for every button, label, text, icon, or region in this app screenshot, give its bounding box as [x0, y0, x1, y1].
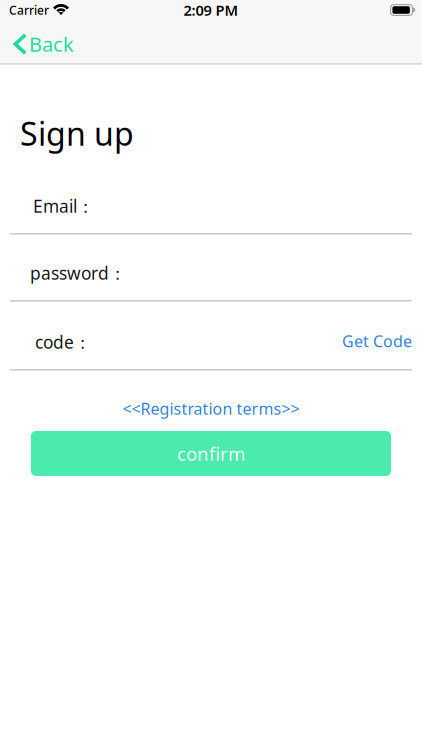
staticText: <<Registration terms>> — [122, 398, 299, 419]
button[interactable]: <<Registration terms>> — [0, 395, 422, 422]
button[interactable]: code： — [0, 320, 300, 364]
staticText: Email： — [33, 194, 94, 217]
button[interactable]: Email： — [0, 184, 402, 228]
button[interactable]: confirm — [31, 431, 391, 476]
staticText: 2:09 PM — [183, 0, 238, 20]
button[interactable]: Back — [0, 20, 88, 64]
staticText: confirm — [177, 441, 245, 466]
staticText: Get Code — [342, 330, 412, 352]
button[interactable]: Get Code — [342, 321, 422, 363]
staticText: Carrier — [9, 2, 49, 18]
button[interactable]: password： — [0, 251, 402, 295]
staticText: Sign up — [20, 112, 134, 154]
staticText: code： — [35, 330, 91, 353]
staticText: Back — [29, 31, 74, 57]
staticText: password： — [30, 261, 126, 284]
